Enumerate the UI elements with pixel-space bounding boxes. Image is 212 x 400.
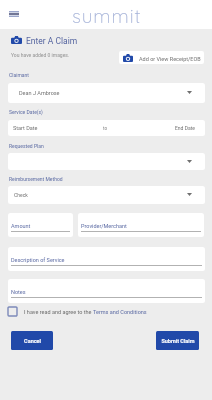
- button[interactable]: Open navigation menu: [4, 4, 24, 24]
- button[interactable]: Notes: [8, 279, 205, 303]
- button[interactable]: Submit Claim: [156, 331, 199, 350]
- staticText: Service Date(s): [9, 109, 43, 115]
- button[interactable]: Check: [8, 186, 205, 204]
- button[interactable]: Add or View Receipt/EOB: [119, 51, 204, 64]
- staticText: Cancel: [24, 338, 41, 344]
- staticText: to: [103, 126, 107, 131]
- button[interactable]: [8, 153, 205, 170]
- other: Claim: [11, 36, 22, 44]
- staticText: Provider/Merchant: [81, 223, 127, 229]
- staticText: summit: [72, 4, 142, 28]
- staticText: Check: [14, 192, 28, 198]
- button[interactable]: Amount: [8, 213, 73, 237]
- staticText: Amount: [11, 223, 31, 229]
- staticText: Claimant: [9, 72, 29, 78]
- staticText: Reimbursement Method: [9, 176, 63, 182]
- staticText: Start Date: [13, 125, 38, 131]
- staticText: Add or View Receipt/EOB: [139, 56, 201, 62]
- button[interactable]: Dean J Ambrose: [8, 83, 205, 103]
- staticText: Submit Claim: [161, 338, 195, 344]
- staticText: Requested Plan: [9, 143, 44, 149]
- staticText: Terms and Conditions: [93, 309, 147, 315]
- staticText: Notes: [11, 289, 26, 295]
- button[interactable]: Start Date: [8, 120, 205, 136]
- staticText: End Date: [175, 125, 195, 131]
- staticText: Enter A Claim: [26, 36, 78, 46]
- staticText: Dean J Ambrose: [19, 90, 60, 96]
- button[interactable]: I have read and agree to the: [8, 306, 147, 317]
- button[interactable]: Provider/Merchant: [78, 213, 204, 237]
- staticText: I have read and agree to the: [24, 309, 93, 315]
- staticText: You have added 0 images.: [11, 52, 70, 58]
- staticText: Description of Service: [11, 257, 65, 263]
- button[interactable]: Description of Service: [8, 247, 205, 271]
- button[interactable]: Cancel: [11, 331, 53, 350]
